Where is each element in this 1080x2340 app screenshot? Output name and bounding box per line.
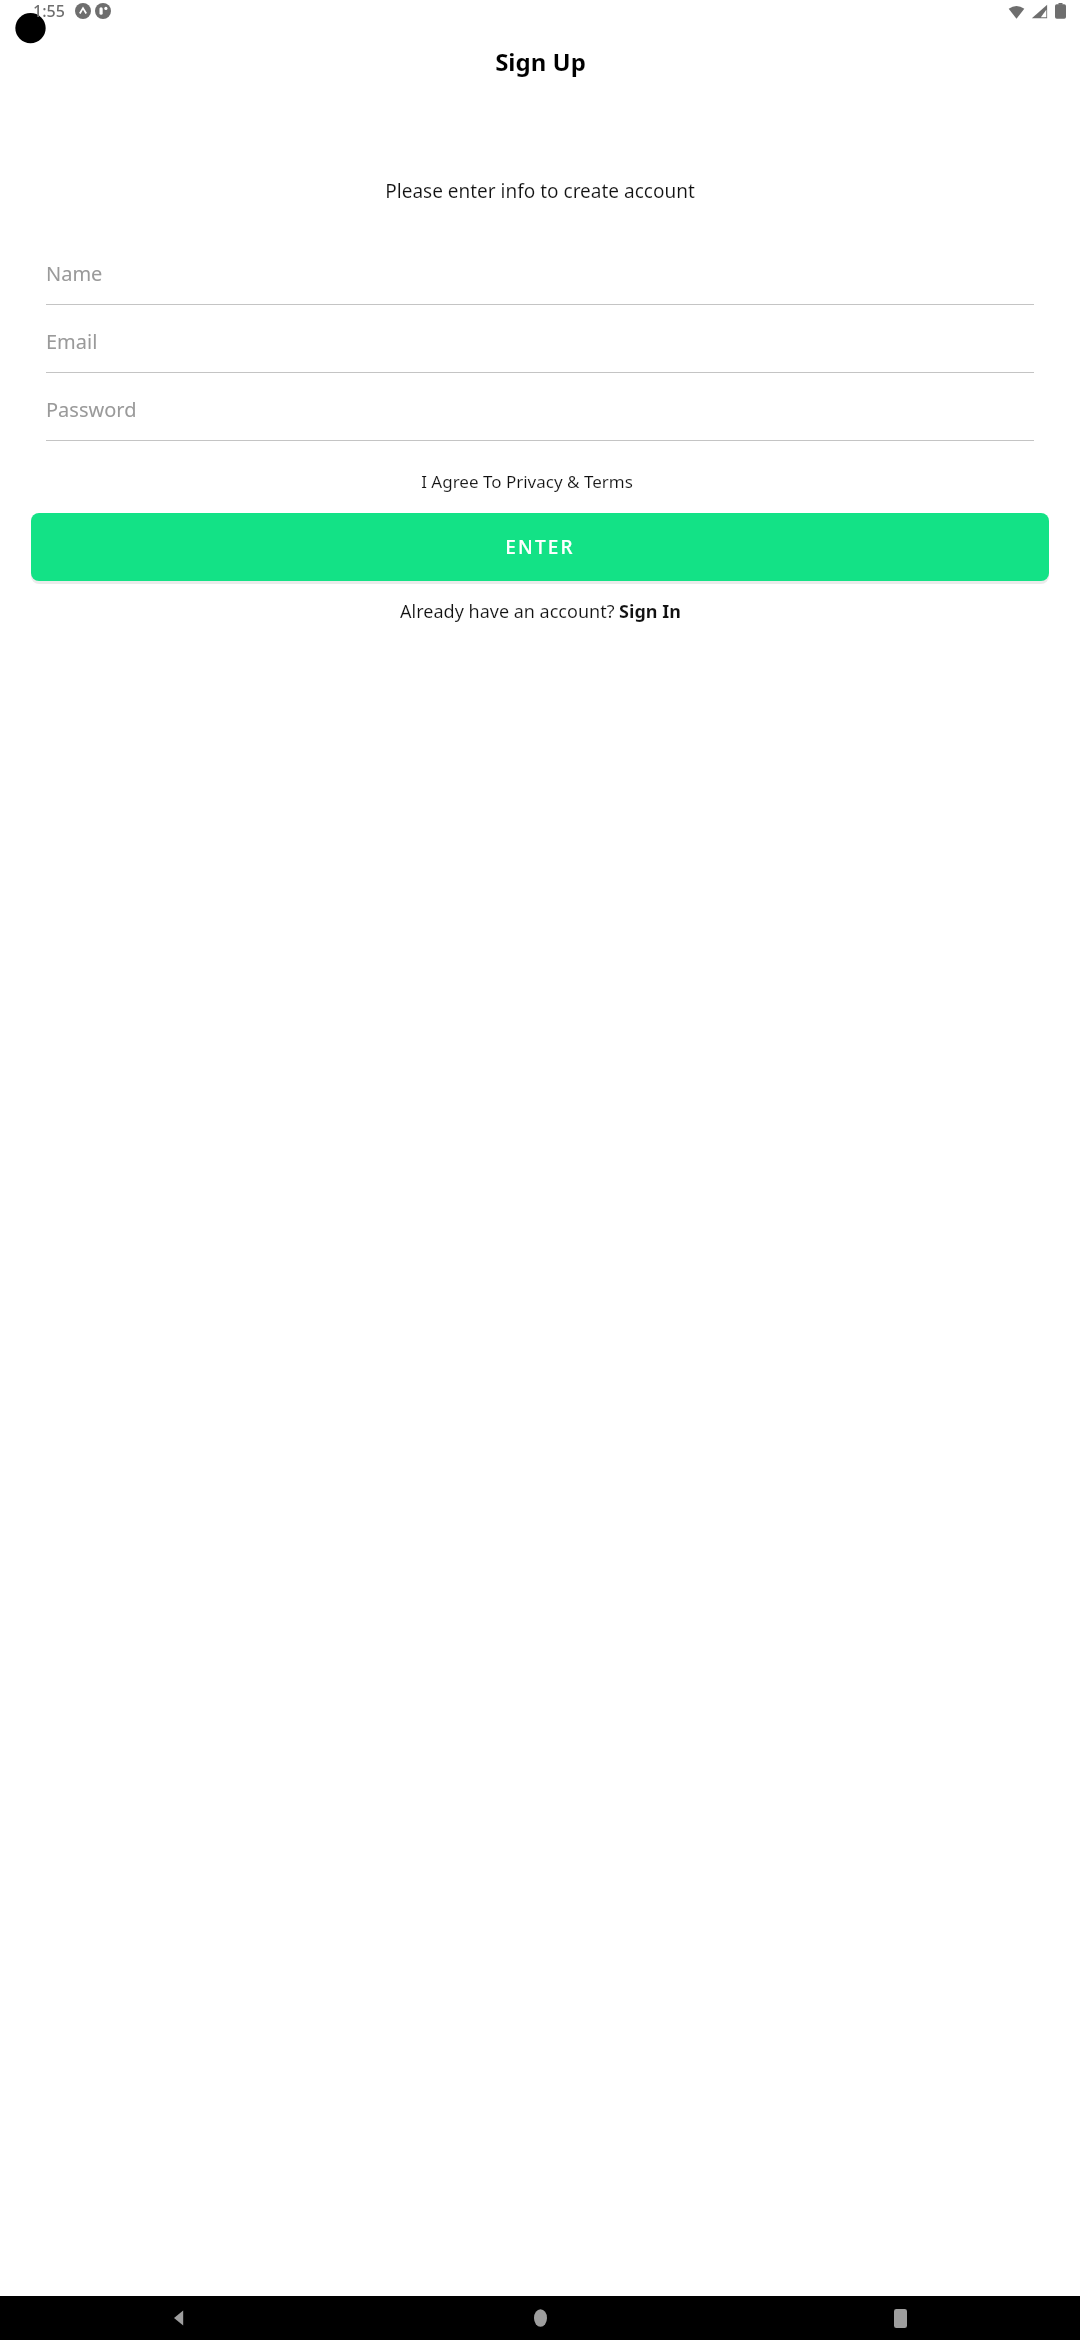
staticText: I Agree To Privacy & Terms bbox=[421, 470, 633, 493]
button[interactable]: Password bbox=[0, 382, 1080, 436]
button[interactable]: Name bbox=[0, 246, 1080, 300]
button[interactable]: Already have an account? Sign In bbox=[0, 593, 1080, 630]
staticText: 1:55 bbox=[33, 0, 65, 22]
staticText: Please enter info to create account bbox=[385, 178, 695, 204]
button[interactable]: Home bbox=[360, 2296, 720, 2340]
staticText: ENTER bbox=[505, 534, 575, 560]
staticText: Already have an account? Sign In bbox=[400, 599, 681, 624]
button[interactable]: Back bbox=[0, 2296, 360, 2340]
button[interactable]: Email bbox=[0, 314, 1080, 368]
staticText: Sign Up bbox=[495, 45, 586, 78]
button[interactable]: ENTER bbox=[31, 513, 1049, 581]
button[interactable]: Recent apps bbox=[720, 2296, 1080, 2340]
staticText: Email bbox=[46, 328, 98, 355]
staticText: Password bbox=[46, 396, 137, 423]
button[interactable]: I Agree To Privacy & Terms bbox=[0, 464, 1080, 499]
staticText: Name bbox=[46, 260, 103, 287]
